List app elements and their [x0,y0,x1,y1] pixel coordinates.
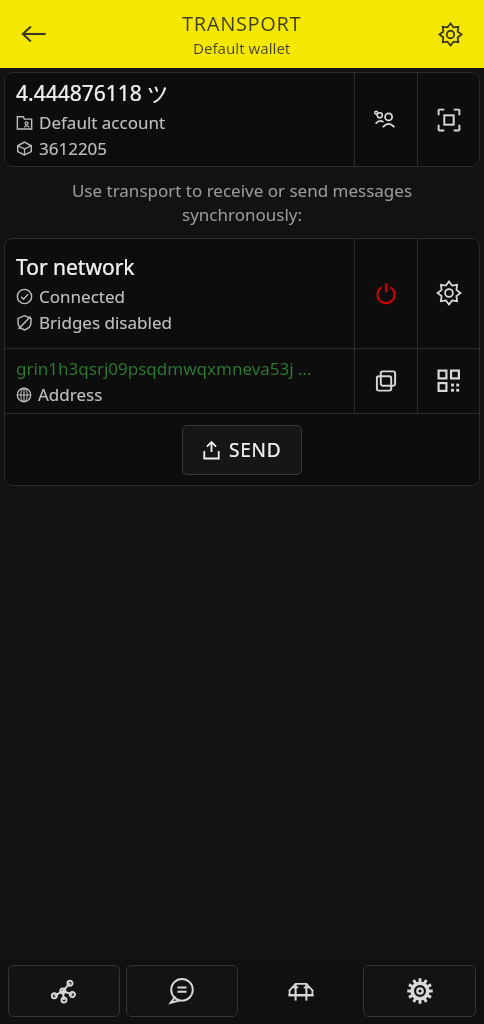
staticText: SEND [229,437,282,463]
button[interactable]: Settings [422,6,478,62]
button[interactable]: Scan code [418,72,480,167]
button[interactable]: Tor settings [418,238,480,348]
button[interactable]: Show QR code [418,349,480,413]
staticText: Default account [39,111,166,134]
button[interactable]: Power [355,238,417,348]
staticText: Connected [39,285,125,308]
staticText: grin1h3qsrj09psqdmwqxmneva53j … [16,357,312,380]
staticText: Bridges disabled [39,311,172,334]
button[interactable]: Copy address [355,349,417,413]
staticText: Use transport to receive or send message… [22,179,462,226]
button[interactable]: Network [8,965,120,1017]
staticText: 3612205 [39,137,108,160]
staticText: Tor network [16,253,135,282]
button[interactable]: grin1h3qsrj09psqdmwqxmneva53j … [4,349,354,413]
button[interactable]: Messages [126,965,238,1017]
button[interactable]: Contacts [355,72,417,167]
staticText: Default wallet [193,38,291,58]
staticText: Address [38,383,103,406]
staticText: 4.444876118 ツ [16,79,169,108]
button[interactable]: 4.444876118 ツ [4,72,354,167]
button[interactable]: Tor network [4,238,354,348]
button[interactable]: SEND [182,425,302,475]
button[interactable]: Back [6,6,62,62]
button[interactable]: Bridge [244,965,357,1017]
button[interactable]: Settings [363,965,476,1017]
staticText: TRANSPORT [182,10,302,37]
